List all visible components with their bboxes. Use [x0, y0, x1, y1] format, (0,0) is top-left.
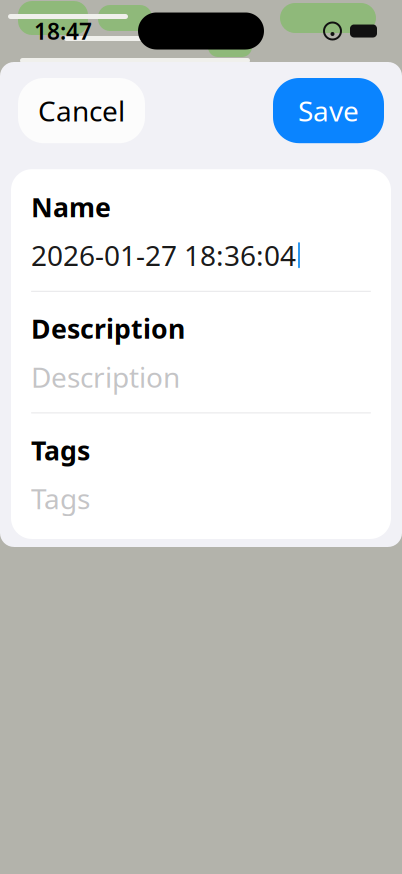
staticText: Description: [31, 311, 185, 346]
staticText: Description: [31, 358, 180, 395]
staticText: 18:47: [34, 16, 92, 46]
staticText: 2026-01-27 18:36:04: [31, 237, 296, 274]
staticText: Cancel: [38, 92, 125, 129]
staticText: Name: [31, 189, 111, 225]
staticText: Save: [298, 92, 359, 129]
button[interactable]: Cancel: [18, 78, 145, 143]
staticText: Tags: [31, 432, 90, 468]
button[interactable]: Save: [273, 78, 384, 143]
staticText: Tags: [31, 480, 90, 517]
